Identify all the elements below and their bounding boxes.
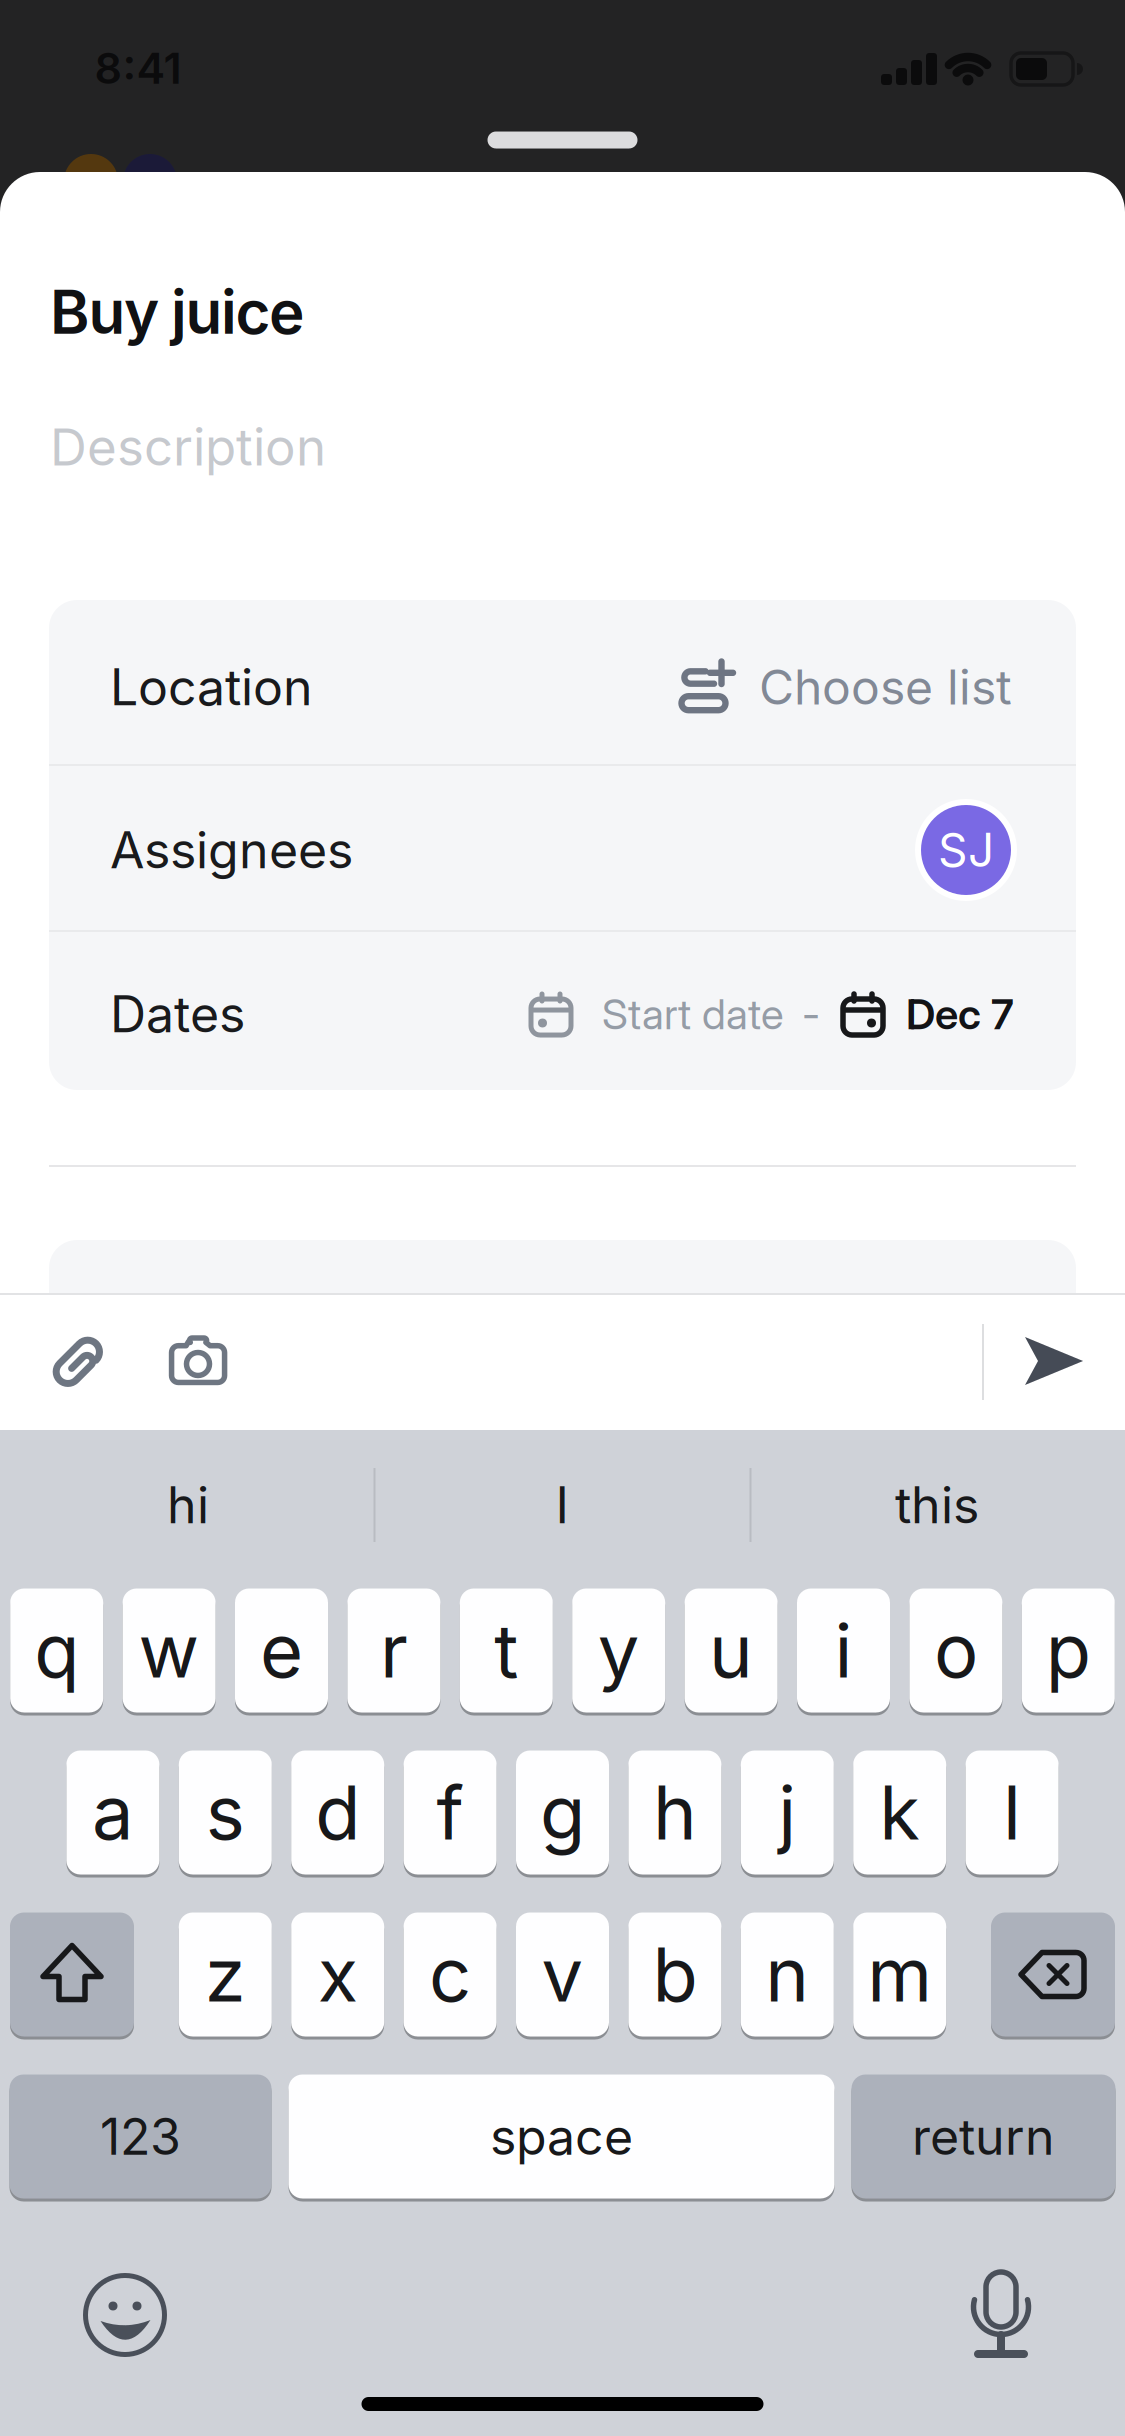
staticText: n <box>765 1930 809 2019</box>
button[interactable]: r <box>347 1587 440 1714</box>
button[interactable]: Shift <box>10 1911 134 2038</box>
staticText: r <box>380 1606 408 1695</box>
button[interactable]: l <box>966 1749 1059 1876</box>
button[interactable]: y <box>572 1587 665 1714</box>
staticText: h <box>653 1768 697 1857</box>
staticText: Description <box>50 416 326 478</box>
staticText: w <box>139 1606 200 1695</box>
staticText: SJ <box>938 822 994 878</box>
button[interactable]: Location <box>50 600 1077 765</box>
staticText: g <box>540 1768 585 1857</box>
button[interactable]: f <box>404 1749 497 1876</box>
staticText: s <box>206 1768 245 1857</box>
staticText: space <box>490 2106 633 2167</box>
staticText: y <box>598 1606 640 1695</box>
button[interactable]: Attach file <box>33 1317 123 1407</box>
staticText: m <box>867 1930 932 2019</box>
button[interactable]: w <box>123 1587 216 1714</box>
staticText: 8:41 <box>94 42 181 94</box>
staticText: a <box>92 1768 134 1857</box>
staticText: j <box>778 1768 796 1857</box>
button[interactable]: 123 <box>9 2073 271 2200</box>
button[interactable]: j <box>741 1749 834 1876</box>
button[interactable]: Dictate <box>951 2263 1051 2363</box>
staticText: z <box>205 1930 246 2019</box>
button[interactable]: g <box>516 1749 609 1876</box>
button[interactable]: Dates <box>50 931 1077 1090</box>
staticText: hi <box>167 1475 209 1535</box>
staticText: 123 <box>100 2106 181 2167</box>
staticText: d <box>315 1768 360 1857</box>
button[interactable]: k <box>853 1749 946 1876</box>
button[interactable]: x <box>291 1911 384 2038</box>
button[interactable]: h <box>628 1749 721 1876</box>
staticText: Location <box>110 657 313 717</box>
staticText: Assignees <box>110 820 353 880</box>
button[interactable]: v <box>516 1911 609 2038</box>
button[interactable]: I <box>392 1455 732 1555</box>
button[interactable]: b <box>628 1911 721 2038</box>
button[interactable]: p <box>1022 1587 1115 1714</box>
button[interactable]: this <box>767 1455 1107 1555</box>
staticText: f <box>437 1768 464 1857</box>
button[interactable]: m <box>853 1911 946 2038</box>
staticText: v <box>541 1930 583 2019</box>
staticText: this <box>895 1475 979 1535</box>
staticText: I <box>555 1475 568 1535</box>
button[interactable]: e <box>235 1587 328 1714</box>
staticText: p <box>1046 1606 1091 1695</box>
staticText: l <box>1003 1768 1021 1857</box>
button[interactable]: space <box>288 2073 834 2200</box>
button[interactable]: hi <box>18 1455 358 1555</box>
staticText: return <box>912 2106 1055 2167</box>
button[interactable]: o <box>909 1587 1002 1714</box>
staticText: Buy juice <box>50 276 304 348</box>
staticText: u <box>709 1606 753 1695</box>
staticText: i <box>834 1606 852 1695</box>
button[interactable]: i <box>797 1587 890 1714</box>
button[interactable]: Send <box>1015 1322 1095 1402</box>
button[interactable]: t <box>460 1587 553 1714</box>
staticText: t <box>494 1606 518 1695</box>
staticText: Start date <box>602 989 784 1039</box>
staticText: Choose list <box>759 658 1012 716</box>
staticText: c <box>429 1930 471 2019</box>
button[interactable]: Emoji <box>75 2265 175 2365</box>
staticText: x <box>318 1930 358 2019</box>
button[interactable]: return <box>851 2073 1115 2200</box>
staticText: b <box>652 1930 697 2019</box>
button[interactable]: Assignees: SJ <box>50 765 1077 931</box>
button[interactable]: a <box>66 1749 159 1876</box>
staticText: e <box>260 1606 303 1695</box>
button[interactable]: Camera <box>153 1317 243 1407</box>
staticText: k <box>879 1768 920 1857</box>
staticText: q <box>34 1606 79 1695</box>
staticText: Dec 7 <box>906 989 1014 1039</box>
staticText: o <box>934 1606 978 1695</box>
button[interactable]: u <box>685 1587 778 1714</box>
button[interactable]: z <box>179 1911 272 2038</box>
button[interactable]: Delete <box>991 1911 1115 2038</box>
button[interactable]: s <box>179 1749 272 1876</box>
staticText: - <box>802 989 820 1039</box>
button[interactable]: q <box>10 1587 103 1714</box>
button[interactable]: n <box>741 1911 834 2038</box>
staticText: Dates <box>110 984 245 1044</box>
button[interactable]: c <box>404 1911 497 2038</box>
button[interactable]: d <box>291 1749 384 1876</box>
